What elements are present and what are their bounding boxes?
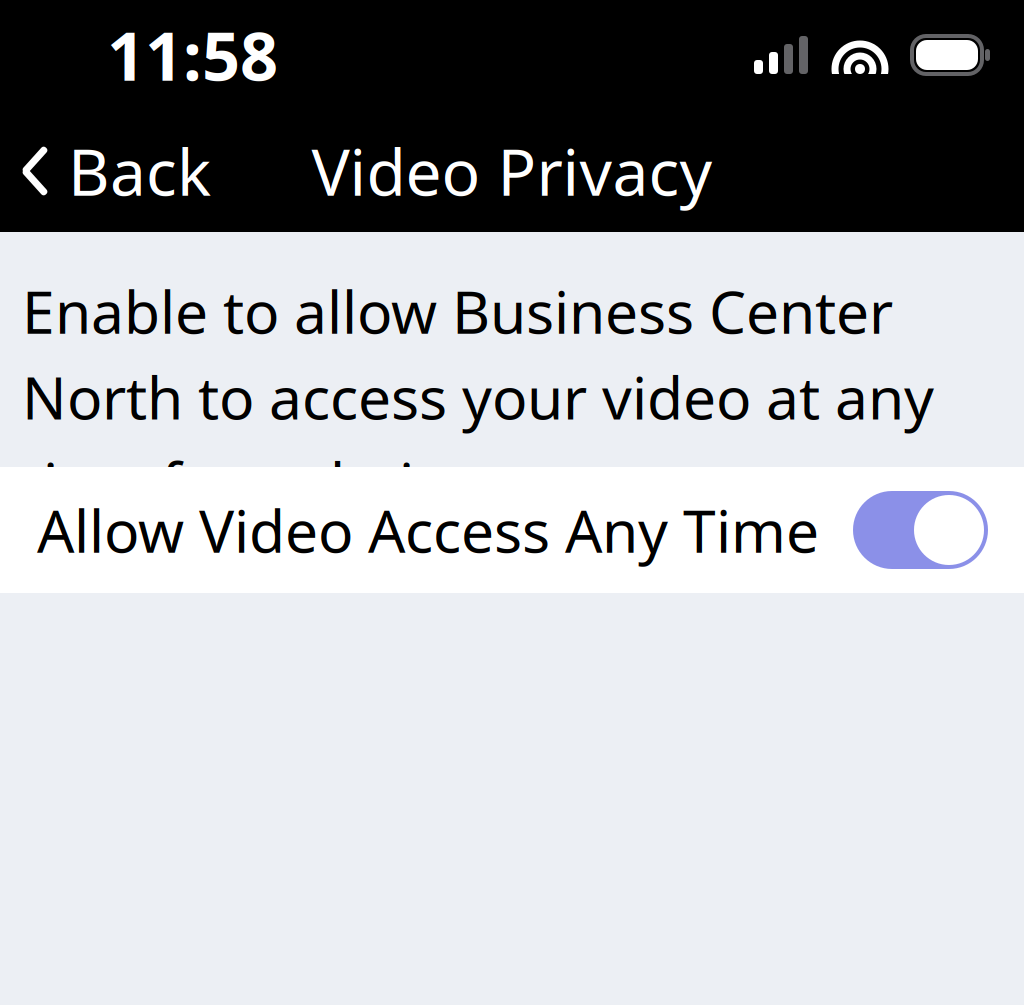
button[interactable]: Allow Video Access Any Time [0,467,1024,593]
staticText: Video Privacy [311,128,712,213]
staticText: Allow Video Access Any Time [37,491,819,569]
staticText: 11:58 [107,11,278,99]
staticText: Enable to allow Business Center North to… [22,272,934,693]
button[interactable]: Back [0,110,235,232]
staticText: Back [68,128,211,213]
